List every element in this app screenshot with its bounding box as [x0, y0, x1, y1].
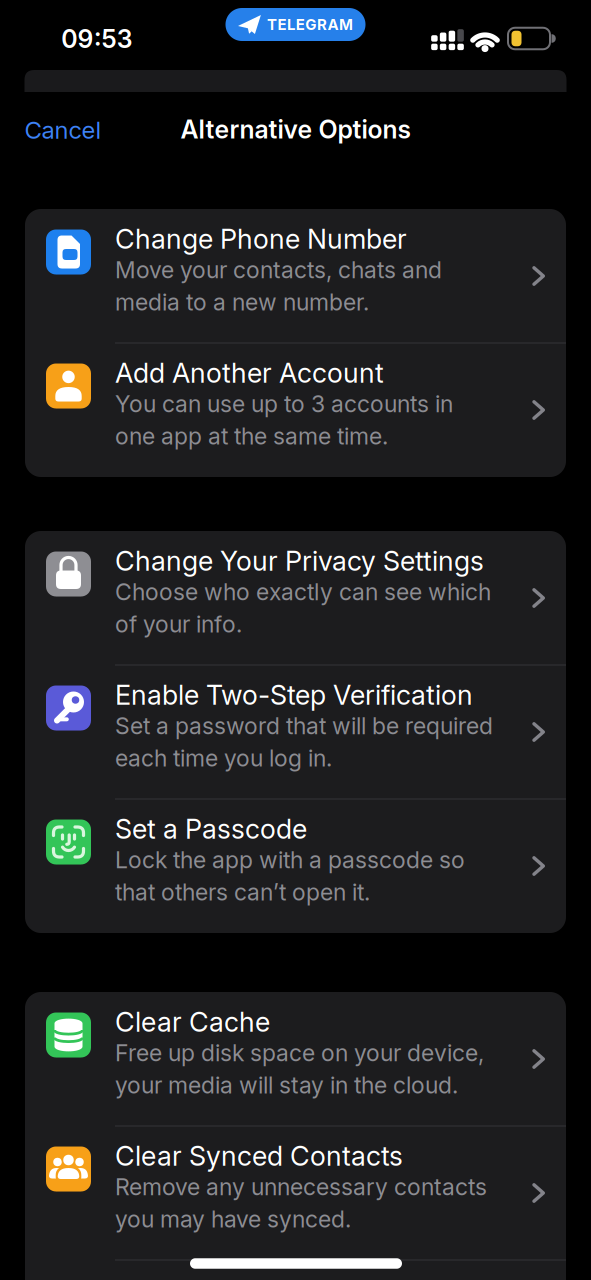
staticText: Enable Two-Step Verification — [115, 678, 473, 711]
button[interactable]: Return to Telegram — [225, 8, 365, 41]
staticText: Set a password that will be required eac… — [115, 712, 493, 772]
staticText: TELEGRAM — [267, 15, 353, 33]
staticText: Add Another Account — [115, 356, 384, 389]
staticText: Change Phone Number — [115, 222, 407, 255]
button[interactable]: Change Phone Number — [25, 209, 566, 343]
staticText: Clear Synced Contacts — [115, 1139, 403, 1172]
button[interactable]: Set a Passcode — [25, 799, 566, 933]
staticText: Clear Cache — [115, 1005, 270, 1038]
staticText: Cancel — [24, 115, 101, 144]
staticText: You can use up to 3 accounts in one app … — [115, 390, 453, 450]
staticText: Free up disk space on your device, your … — [115, 1039, 484, 1099]
button[interactable]: Clear Cache — [25, 992, 566, 1126]
staticText: Move your contacts, chats and media to a… — [115, 256, 442, 316]
button[interactable]: Clear Synced Contacts — [25, 1126, 566, 1260]
staticText: Change Your Privacy Settings — [115, 544, 484, 577]
staticText: 09:53 — [61, 24, 133, 54]
staticText: Lock the app with a passcode so that oth… — [115, 846, 465, 906]
button[interactable]: Enable Two-Step Verification — [25, 665, 566, 799]
button[interactable]: Add Another Account — [25, 343, 566, 477]
button[interactable]: Change Your Privacy Settings — [25, 531, 566, 665]
button[interactable]: Cancel — [24, 115, 101, 144]
staticText: Alternative Options — [180, 114, 410, 145]
staticText: Set a Passcode — [115, 812, 307, 845]
staticText: Remove any unnecessary contacts you may … — [115, 1173, 487, 1233]
staticText: Choose who exactly can see which of your… — [115, 578, 491, 638]
